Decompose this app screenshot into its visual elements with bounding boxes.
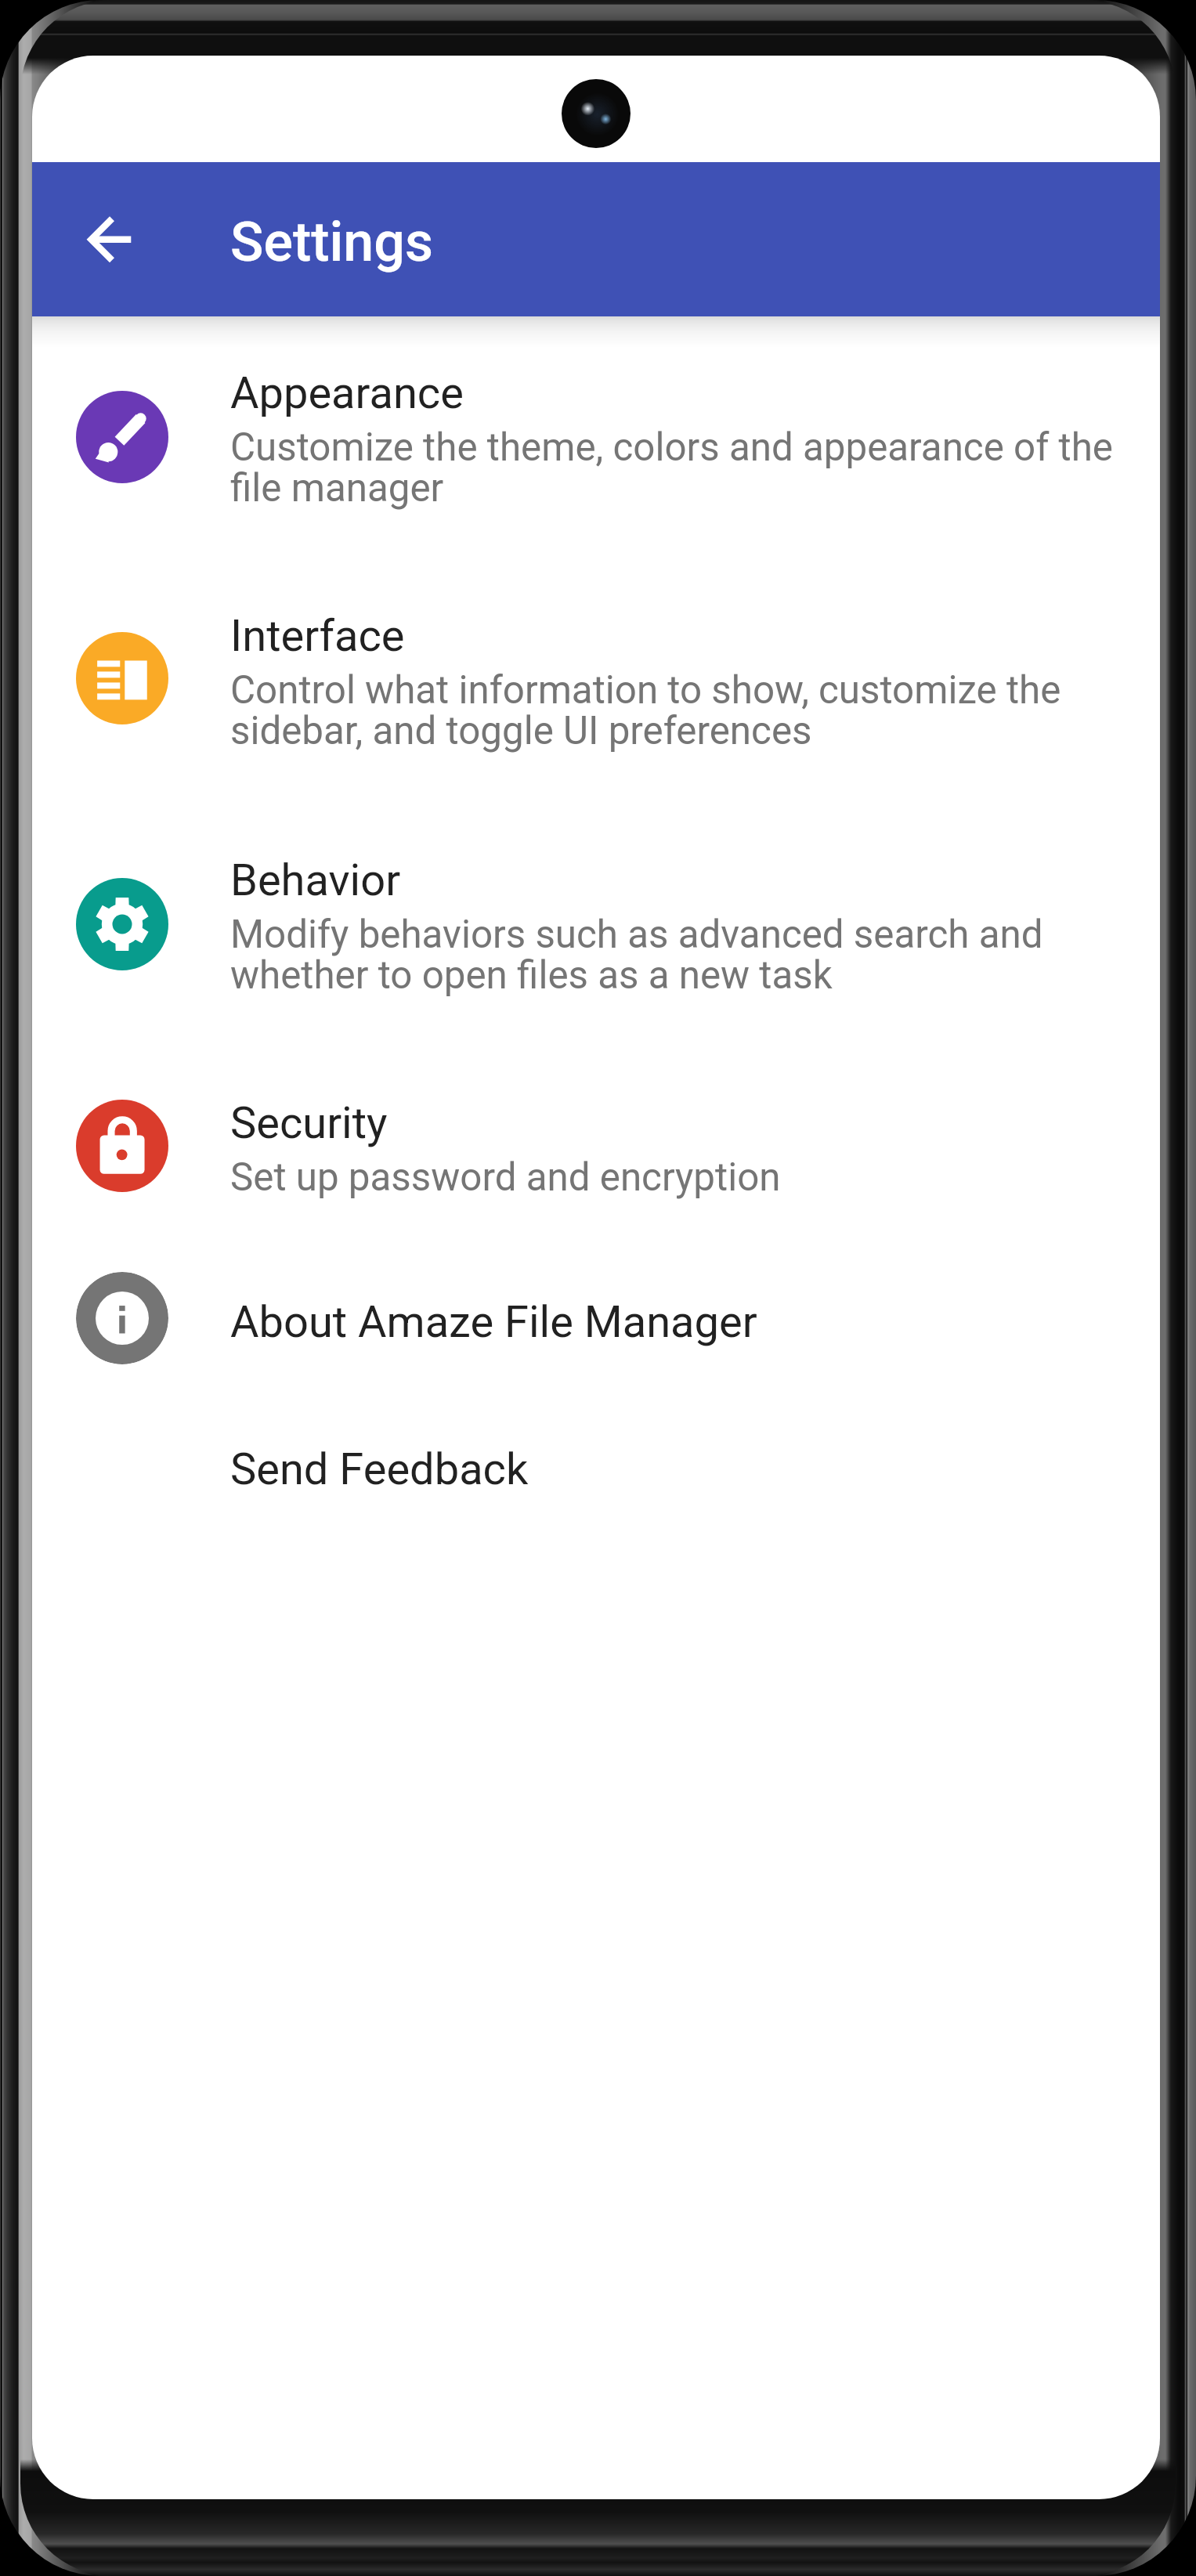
staticText: Send Feedback bbox=[230, 1443, 529, 1495]
button[interactable]: Navigate up bbox=[71, 202, 146, 277]
staticText: Interface bbox=[230, 610, 405, 662]
button[interactable]: Interface bbox=[32, 569, 1160, 813]
staticText: Settings bbox=[230, 210, 434, 274]
staticText: Modify behaviors such as advanced search… bbox=[230, 916, 1139, 997]
button[interactable]: Security bbox=[32, 1056, 1160, 1255]
staticText: Set up password and encryption bbox=[230, 1158, 781, 1199]
button[interactable]: Behavior bbox=[32, 813, 1160, 1056]
staticText: Security bbox=[230, 1097, 388, 1149]
button[interactable]: Send Feedback bbox=[32, 1402, 1160, 1549]
button[interactable]: Appearance bbox=[32, 326, 1160, 569]
staticText: Behavior bbox=[230, 854, 401, 906]
staticText: Appearance bbox=[230, 367, 464, 419]
staticText: Customize the theme, colors and appearan… bbox=[230, 428, 1139, 510]
staticText: Control what information to show, custom… bbox=[230, 671, 1139, 753]
staticText: About Amaze File Manager bbox=[230, 1296, 757, 1348]
button[interactable]: About Amaze File Manager bbox=[32, 1255, 1160, 1402]
